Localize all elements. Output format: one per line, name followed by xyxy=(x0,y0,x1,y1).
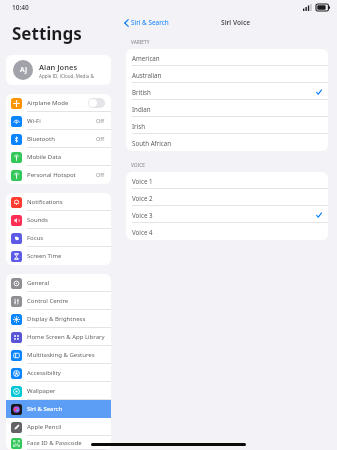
staticText: Siri Voice xyxy=(221,18,251,27)
button[interactable]: Personal Hotspot xyxy=(6,166,111,184)
button[interactable]: Siri & Search xyxy=(6,400,111,418)
staticText: Australian xyxy=(132,71,322,79)
staticText: Indian xyxy=(132,105,322,113)
button[interactable]: Mobile Data xyxy=(6,148,111,166)
button[interactable]: Home Screen & App Library xyxy=(6,328,111,346)
button[interactable]: Bluetooth xyxy=(6,130,111,148)
button[interactable]: Control Centre xyxy=(6,292,111,310)
staticText: Display & Brightness xyxy=(27,315,105,323)
button[interactable]: Apple Pencil xyxy=(6,418,111,436)
button[interactable]: Voice 1 xyxy=(126,172,328,189)
button[interactable]: Face ID & Passcode xyxy=(6,436,111,450)
button[interactable]: General xyxy=(6,274,111,292)
other: Airplane Mode toggle xyxy=(88,98,105,108)
staticText: Sounds xyxy=(27,216,105,224)
button[interactable]: Siri & Search xyxy=(124,18,169,27)
staticText: Off xyxy=(96,171,105,179)
staticText: VARIETY xyxy=(131,39,150,46)
staticText: Apple Pencil xyxy=(27,423,105,431)
button[interactable]: Wallpaper xyxy=(6,382,111,400)
staticText: Off xyxy=(96,117,105,125)
button[interactable]: Sounds xyxy=(6,211,111,229)
staticText: Irish xyxy=(132,122,322,130)
staticText: Voice 3 xyxy=(132,211,316,219)
button[interactable]: Wi-Fi xyxy=(6,112,111,130)
staticText: Siri & Search xyxy=(27,405,105,413)
staticText: British xyxy=(132,88,316,96)
button[interactable]: Display & Brightness xyxy=(6,310,111,328)
staticText: Focus xyxy=(27,234,105,242)
staticText: Settings xyxy=(12,22,82,45)
button[interactable]: South African xyxy=(126,134,328,151)
button[interactable]: Australian xyxy=(126,66,328,83)
staticText: Apple ID, iCloud, Media & Purchases xyxy=(39,73,104,79)
staticText: Mobile Data xyxy=(27,153,105,161)
staticText: Voice 2 xyxy=(132,194,322,202)
staticText: American xyxy=(132,54,322,62)
button[interactable]: Focus xyxy=(6,229,111,247)
staticText: General xyxy=(27,279,105,287)
staticText: Voice 1 xyxy=(132,177,322,185)
button[interactable]: Airplane Mode xyxy=(6,94,111,112)
staticText: South African xyxy=(132,139,322,147)
staticText: Off xyxy=(96,135,105,143)
button[interactable]: Accessibility xyxy=(6,364,111,382)
staticText: Face ID & Passcode xyxy=(27,439,105,447)
button[interactable]: AJ xyxy=(6,55,111,85)
staticText: Notifications xyxy=(27,198,105,206)
staticText: Siri & Search xyxy=(131,18,169,27)
staticText: Airplane Mode xyxy=(27,99,88,107)
button[interactable]: Notifications xyxy=(6,193,111,211)
staticText: Voice 4 xyxy=(132,228,322,236)
staticText: Personal Hotspot xyxy=(27,171,96,179)
button[interactable]: American xyxy=(126,49,328,66)
staticText: Home Screen & App Library xyxy=(27,333,105,341)
staticText: Multitasking & Gestures xyxy=(27,351,105,359)
staticText: Screen Time xyxy=(27,252,105,260)
button[interactable]: Voice 2 xyxy=(126,189,328,206)
staticText: 10:40 xyxy=(12,3,29,12)
button[interactable]: Screen Time xyxy=(6,247,111,265)
staticText: Bluetooth xyxy=(27,135,96,143)
button[interactable]: British xyxy=(126,83,328,100)
button[interactable]: Voice 3 xyxy=(126,206,328,223)
staticText: VOICE xyxy=(131,162,145,169)
button[interactable]: Voice 4 xyxy=(126,223,328,240)
staticText: Alan Jones xyxy=(39,62,78,72)
staticText: AJ xyxy=(20,65,27,75)
staticText: Wallpaper xyxy=(27,387,105,395)
staticText: Wi-Fi xyxy=(27,117,96,125)
button[interactable]: Irish xyxy=(126,117,328,134)
button[interactable]: Multitasking & Gestures xyxy=(6,346,111,364)
button[interactable]: Indian xyxy=(126,100,328,117)
staticText: Accessibility xyxy=(27,369,105,377)
staticText: Control Centre xyxy=(27,297,105,305)
